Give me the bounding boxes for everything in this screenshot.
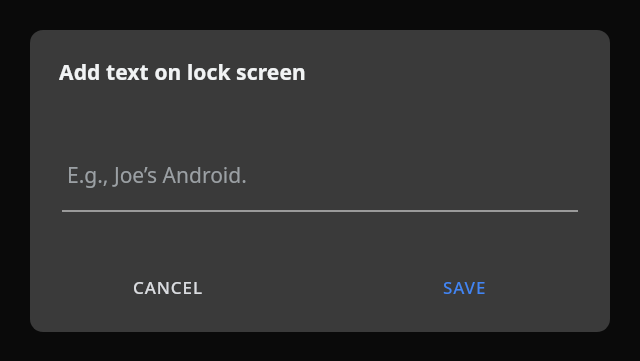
staticText: Add text on lock screen [59, 58, 306, 87]
button[interactable]: E.g., Joe’s Android. [67, 155, 573, 195]
staticText: SAVE [443, 276, 487, 299]
button[interactable]: CANCEL [119, 265, 217, 309]
staticText: CANCEL [133, 276, 203, 299]
button[interactable]: SAVE [429, 265, 501, 309]
staticText: E.g., Joe’s Android. [67, 161, 247, 190]
